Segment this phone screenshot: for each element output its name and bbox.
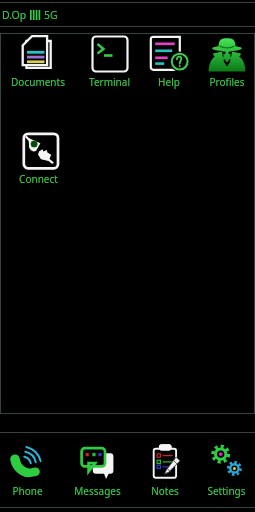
staticText: Messages <box>74 484 121 498</box>
other: Profiles <box>208 35 246 73</box>
other: Terminal <box>91 35 129 73</box>
other: Messages <box>80 444 116 480</box>
button[interactable]: Phone <box>0 444 59 506</box>
button[interactable]: Terminal <box>78 35 140 91</box>
button[interactable]: Messages <box>65 444 129 506</box>
staticText: 5G <box>44 8 58 22</box>
button[interactable]: Help <box>138 35 200 91</box>
other: Phone <box>9 444 45 480</box>
staticText: Terminal <box>89 75 130 89</box>
button[interactable]: Notes <box>133 444 197 506</box>
staticText: Connect <box>19 172 58 186</box>
other: Settings <box>209 444 245 480</box>
staticText: Profiles <box>209 75 245 89</box>
staticText: Phone <box>12 484 43 498</box>
button[interactable]: Documents <box>7 35 69 91</box>
other: Notes <box>147 444 183 480</box>
button[interactable]: Connect <box>7 132 69 188</box>
staticText: D.Op <box>2 8 27 22</box>
button[interactable]: Settings <box>194 444 255 506</box>
button[interactable]: Profiles <box>196 35 255 91</box>
other: Connect <box>20 132 58 170</box>
staticText: Settings <box>207 484 246 498</box>
staticText: Documents <box>11 75 65 89</box>
staticText: Help <box>158 75 180 89</box>
other: Help <box>150 35 188 73</box>
staticText: Notes <box>151 484 179 498</box>
other: Documents <box>19 35 57 73</box>
